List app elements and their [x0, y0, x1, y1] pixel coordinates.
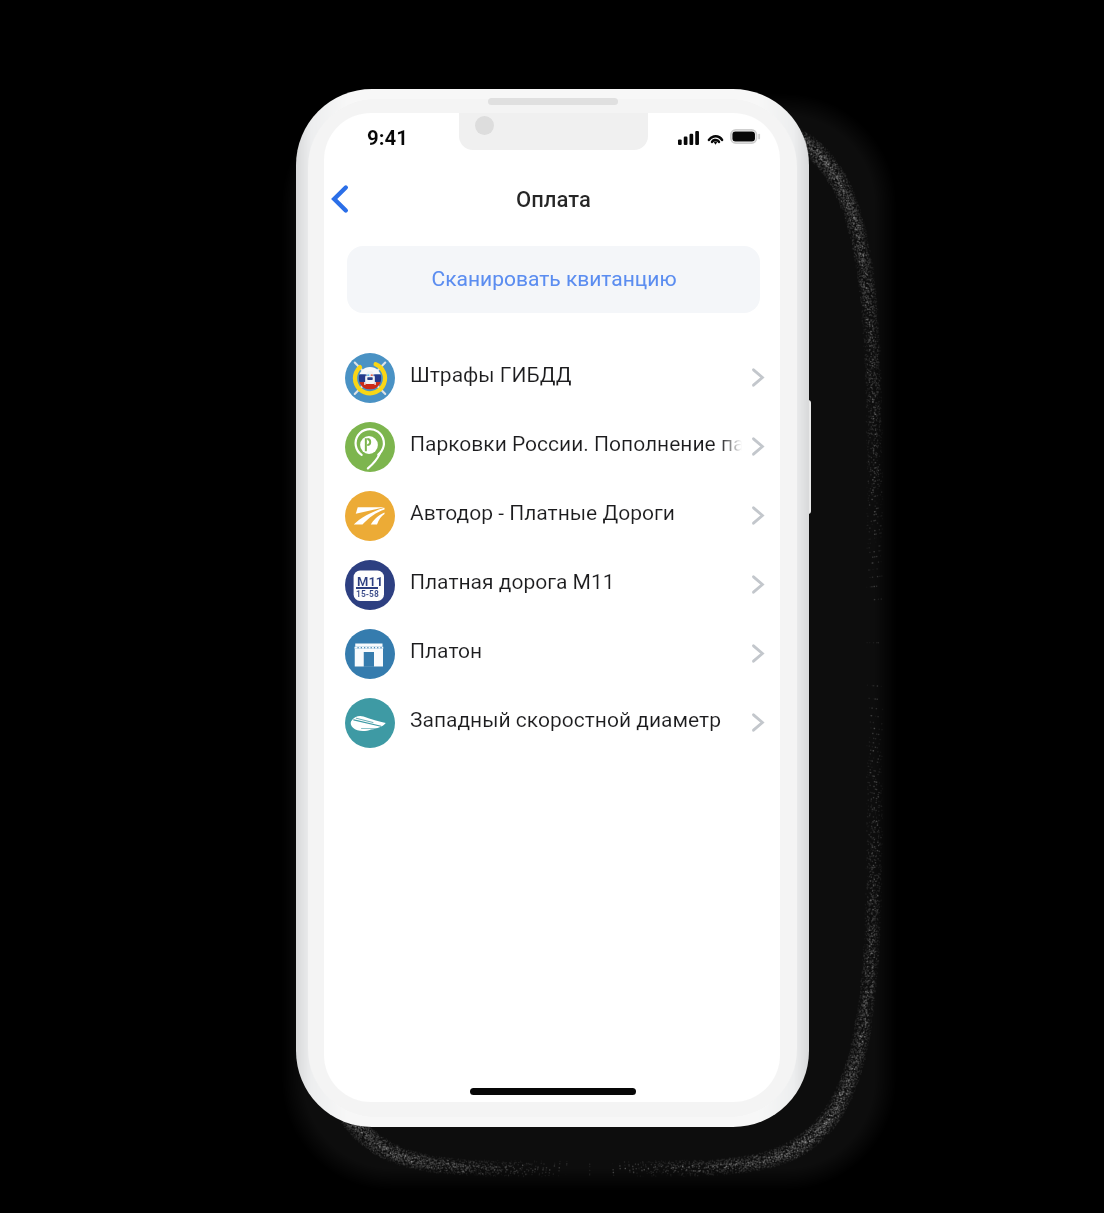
staticText: 9:41	[367, 126, 409, 150]
staticText: Сканировать квитанцию	[431, 267, 677, 292]
staticText: Платон	[410, 639, 483, 664]
button[interactable]: Сканировать квитанцию	[347, 246, 760, 313]
staticText: M11	[357, 574, 384, 589]
staticText: Штрафы ГИБДД	[410, 363, 572, 388]
staticText: Западный скоростной диаметр	[410, 708, 721, 733]
button[interactable]: M11	[324, 550, 780, 619]
staticText: Парковки России. Пополнение парковочного…	[410, 432, 742, 457]
staticText: 15-58	[356, 589, 379, 599]
button[interactable]: Штрафы ГИБДД	[324, 343, 780, 412]
button[interactable]: Западный скоростной диаметр	[324, 688, 780, 757]
button[interactable]: Back	[324, 175, 364, 222]
staticText: Оплата	[516, 187, 591, 213]
staticText: Автодор - Платные Дороги	[410, 501, 675, 526]
button[interactable]: Парковки России. Пополнение парковочного…	[324, 412, 780, 481]
button[interactable]: Автодор - Платные Дороги	[324, 481, 780, 550]
staticText: Платная дорога М11	[410, 570, 615, 595]
button[interactable]: Платон	[324, 619, 780, 688]
